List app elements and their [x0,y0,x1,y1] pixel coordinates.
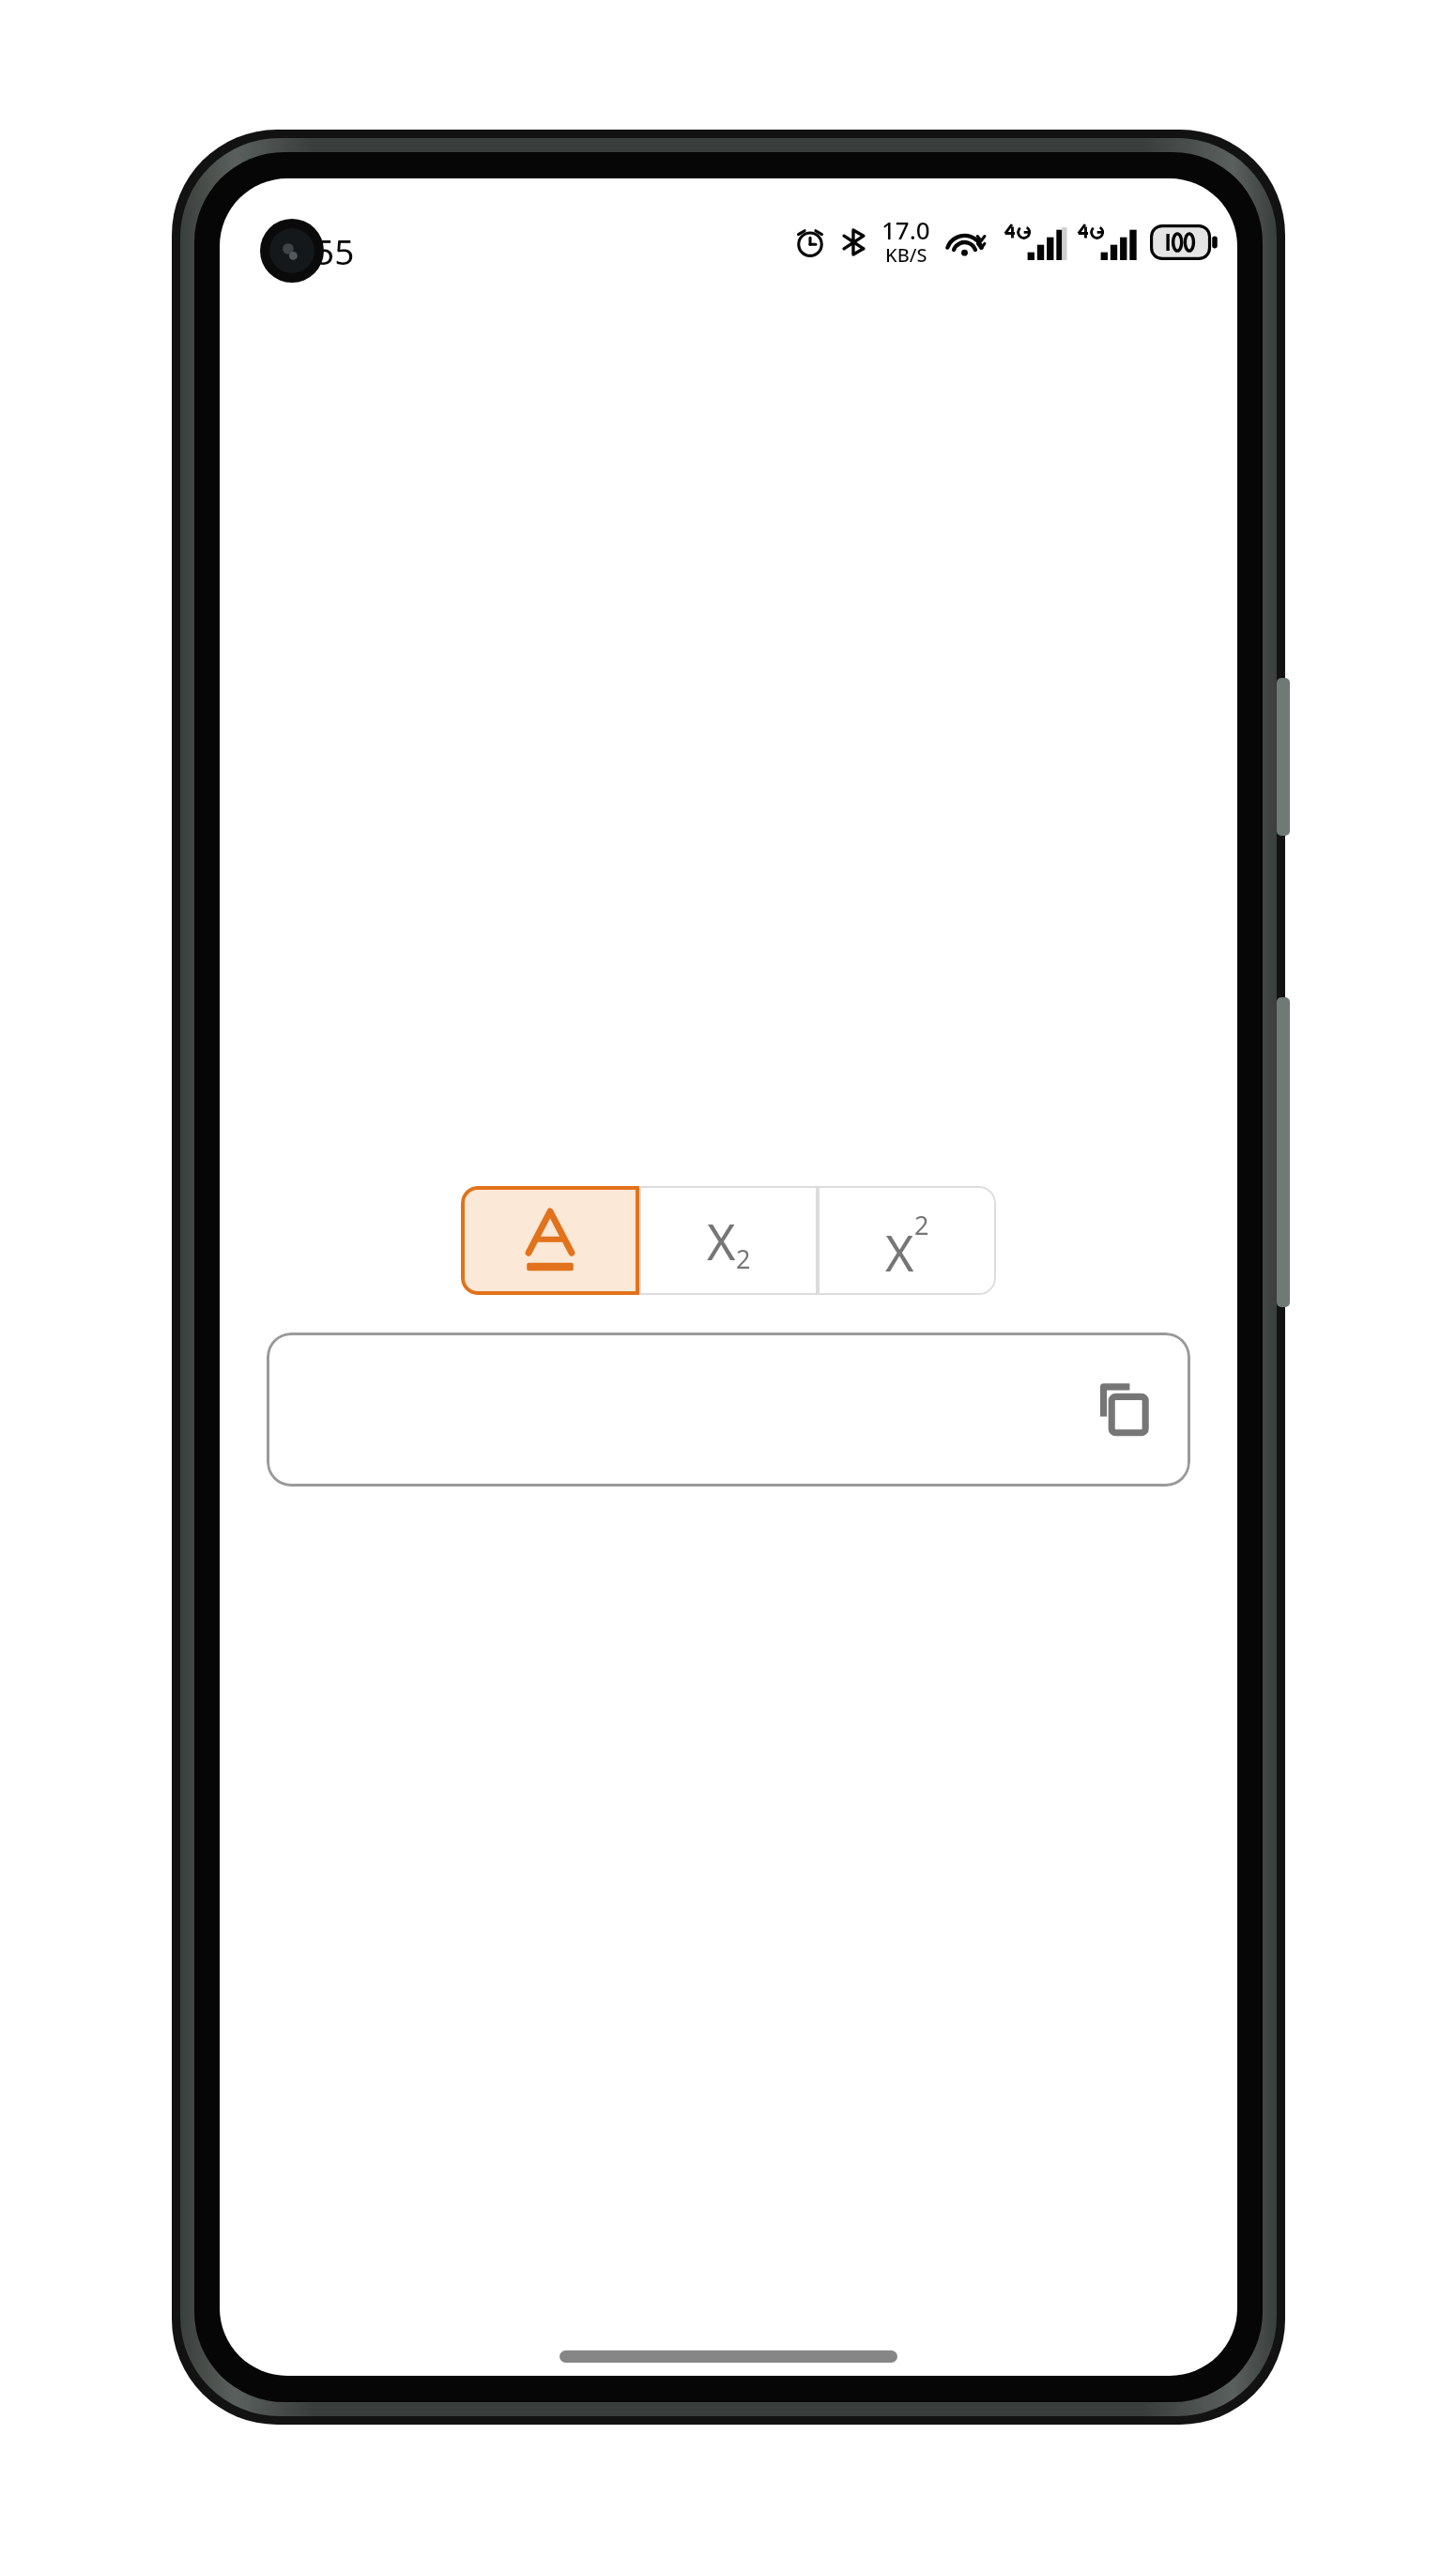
button[interactable]: Copy [1078,1364,1168,1455]
staticText: 2 [914,1208,929,1242]
staticText: 17.0 [881,213,930,246]
staticText: KB/S [885,242,927,268]
staticText: X [885,1219,914,1286]
button[interactable]: X [639,1186,818,1295]
button[interactable]: Text format [461,1186,639,1295]
staticText: X [707,1208,736,1274]
staticText: 2 [736,1241,751,1276]
button[interactable]: Copy [267,1333,1190,1487]
button[interactable]: X [818,1186,996,1295]
staticText: 55 [314,227,355,274]
